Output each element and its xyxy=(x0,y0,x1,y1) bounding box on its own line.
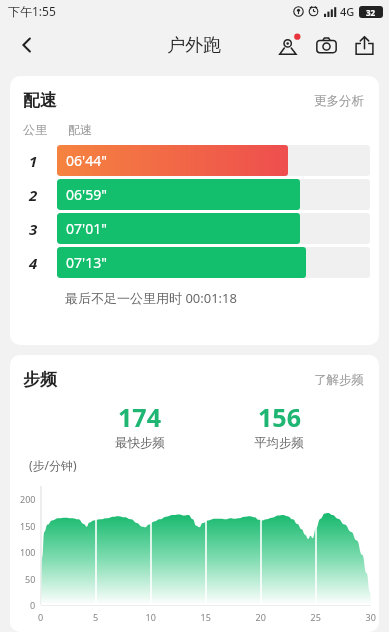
staticText: 07'01" xyxy=(66,219,107,238)
button[interactable]: 2 xyxy=(10,179,379,210)
staticText: 最后不足一公里用时 00:01:18 xyxy=(65,289,237,307)
staticText: 2 xyxy=(29,185,38,205)
staticText: 步频 xyxy=(23,369,57,390)
staticText: 户外跑 xyxy=(167,34,221,57)
staticText: 平均步频 xyxy=(254,435,304,451)
staticText: 06'44" xyxy=(66,151,107,170)
button[interactable]: Camera xyxy=(307,26,345,64)
staticText: 06'59" xyxy=(66,185,107,204)
staticText: 156 xyxy=(258,400,301,434)
staticText: (步/分钟) xyxy=(29,457,77,473)
staticText: 07'13" xyxy=(66,253,107,272)
button[interactable]: Map xyxy=(269,26,307,64)
staticText: 公里 xyxy=(23,122,47,137)
button[interactable]: 1 xyxy=(10,145,379,176)
staticText: 4 xyxy=(29,253,38,273)
button[interactable]: 3 xyxy=(10,213,379,244)
staticText: 174 xyxy=(118,400,161,434)
staticText: 1 xyxy=(29,151,38,171)
staticText: 配速 xyxy=(23,90,57,111)
staticText: 下午1:55 xyxy=(8,3,56,19)
button[interactable]: Share xyxy=(345,26,383,64)
staticText: 32 xyxy=(366,7,376,18)
button[interactable]: 4 xyxy=(10,247,379,278)
staticText: 4G xyxy=(340,4,355,19)
staticText: 3 xyxy=(29,219,38,239)
staticText: 了解步频 xyxy=(314,372,364,388)
staticText: 最快步频 xyxy=(115,435,165,451)
button[interactable]: Back xyxy=(10,28,44,62)
staticText: 配速 xyxy=(68,122,92,137)
staticText: 更多分析 xyxy=(314,93,364,109)
button[interactable]: 了解步频 xyxy=(312,370,366,390)
button[interactable]: 更多分析 xyxy=(312,91,366,111)
